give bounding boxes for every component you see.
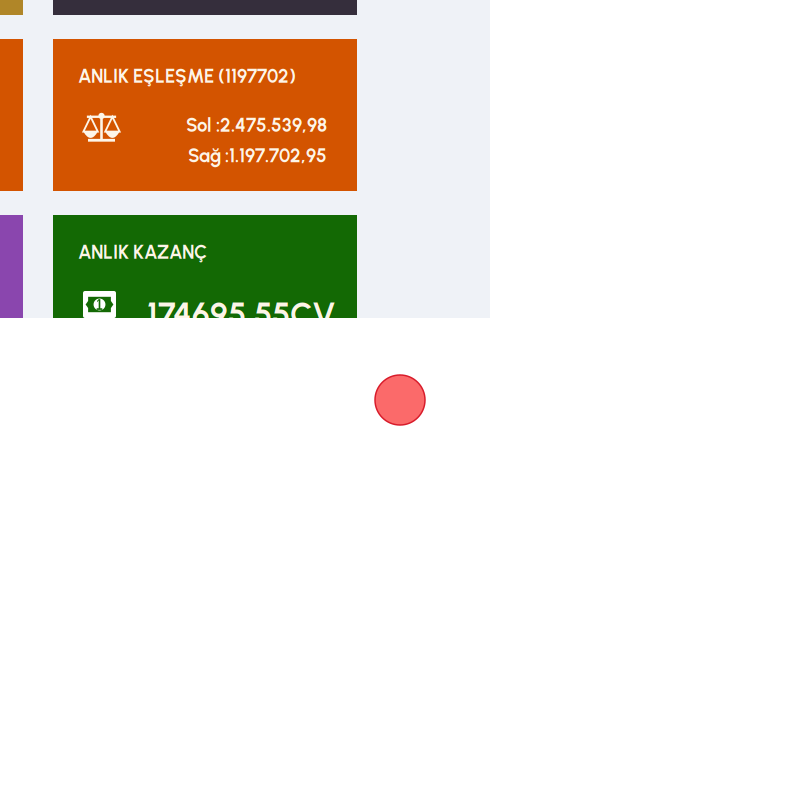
staticText: Sağ :1.197.702,95	[188, 144, 327, 167]
button[interactable]: ANLIK KAZANÇ	[53, 215, 357, 335]
button[interactable]: KARİYER PUANI	[0, 215, 23, 335]
staticText: GÜNLÜK ÖZET	[78, 26, 200, 48]
button[interactable]: ANLIK EŞLEŞME (1197702)	[53, 39, 357, 191]
staticText: Sol :2.475.539,98	[186, 114, 327, 136]
staticText: ANLIK EŞLEŞME (1197702)	[78, 65, 296, 87]
staticText: 174695,55CV	[147, 295, 336, 333]
staticText: ANLIK KAZANÇ	[78, 241, 207, 263]
staticText: 1.240,00	[218, 76, 336, 114]
